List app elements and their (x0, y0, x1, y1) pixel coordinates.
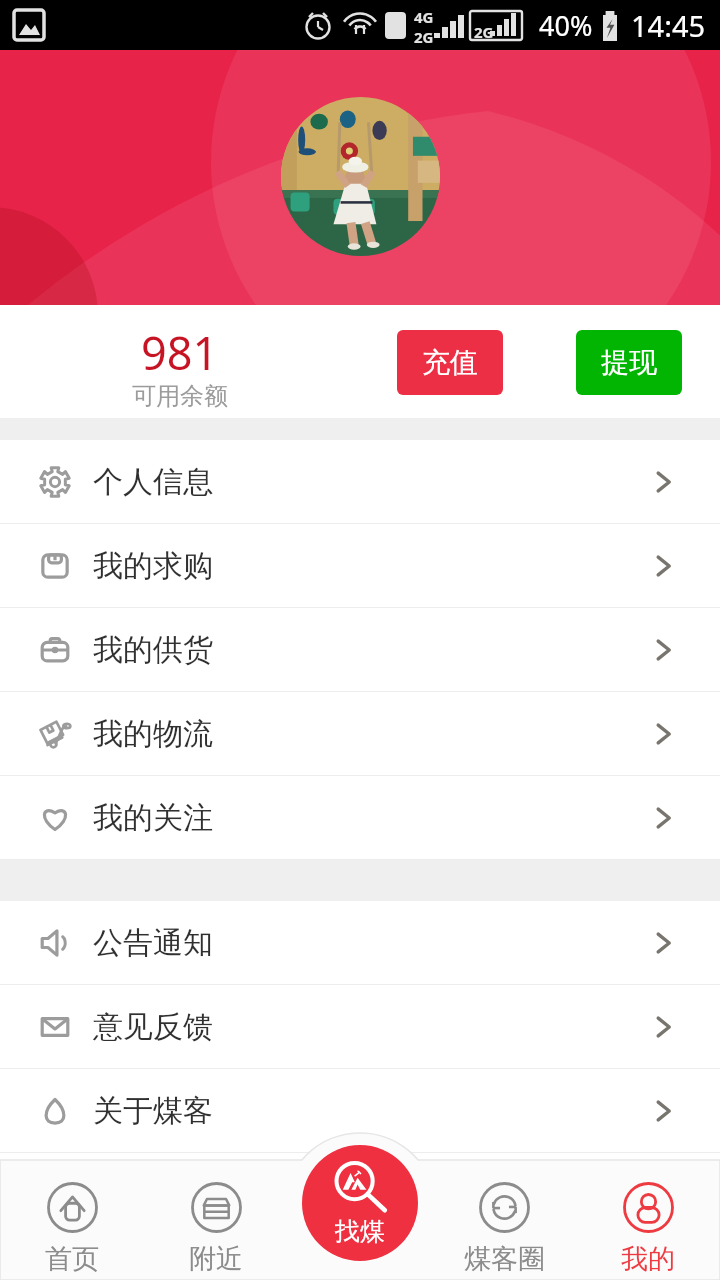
button[interactable]: 意见反馈 (0, 985, 720, 1068)
button[interactable]: 充值 (397, 330, 503, 395)
staticText: 首页 (45, 1242, 99, 1276)
other: 我的供货 (39, 634, 71, 666)
button[interactable]: 我的供货 (0, 608, 720, 691)
staticText: 我的关注 (93, 799, 213, 837)
other: 公告通知 (39, 927, 71, 959)
staticText: 981 (141, 322, 219, 383)
button[interactable]: 煤客圈 (446, 1160, 563, 1280)
staticText: 找煤 (335, 1216, 385, 1247)
staticText: 4G (414, 7, 434, 27)
staticText: 提现 (601, 345, 657, 380)
staticText: 我的 (621, 1242, 675, 1276)
staticText: 公告通知 (93, 924, 213, 962)
other: 附近 (190, 1181, 243, 1234)
other: 我的求购 (39, 550, 71, 582)
other: 关于煤客 (39, 1095, 71, 1127)
button[interactable]: 首页 (27, 1160, 117, 1280)
staticText: 我的物流 (93, 715, 213, 753)
staticText: 个人信息 (93, 463, 213, 501)
staticText: 40% (539, 7, 593, 44)
other: 个人信息 (39, 466, 71, 498)
button[interactable]: 提现 (576, 330, 682, 395)
button[interactable]: 我的 (603, 1160, 693, 1280)
button[interactable]: 我的关注 (0, 776, 720, 859)
staticText: 关于煤客 (93, 1092, 213, 1130)
other: 我的 (622, 1181, 675, 1234)
staticText: 我的求购 (93, 547, 213, 585)
button[interactable]: 附近 (171, 1160, 261, 1280)
staticText: 2G (414, 27, 434, 47)
button[interactable]: 我的求购 (0, 524, 720, 607)
button[interactable]: 关于煤客 (0, 1069, 720, 1152)
staticText: 充值 (422, 345, 478, 380)
staticText: 2G (474, 22, 494, 42)
staticText: 可用余额 (132, 381, 228, 411)
staticText: 煤客圈 (464, 1242, 545, 1276)
other: 意见反馈 (39, 1011, 71, 1043)
button[interactable]: 我的物流 (0, 692, 720, 775)
staticText: 意见反馈 (93, 1008, 213, 1046)
other: 我的关注 (39, 802, 71, 834)
other: 首页 (46, 1181, 99, 1234)
other: 我的物流 (39, 718, 71, 750)
button[interactable]: 找煤 (302, 1145, 418, 1261)
button[interactable]: 个人信息 (0, 440, 720, 523)
staticText: 14:45 (631, 6, 706, 45)
other: 煤客圈 (478, 1181, 531, 1234)
button[interactable]: 公告通知 (0, 901, 720, 984)
staticText: 我的供货 (93, 631, 213, 669)
staticText: 附近 (189, 1242, 243, 1276)
